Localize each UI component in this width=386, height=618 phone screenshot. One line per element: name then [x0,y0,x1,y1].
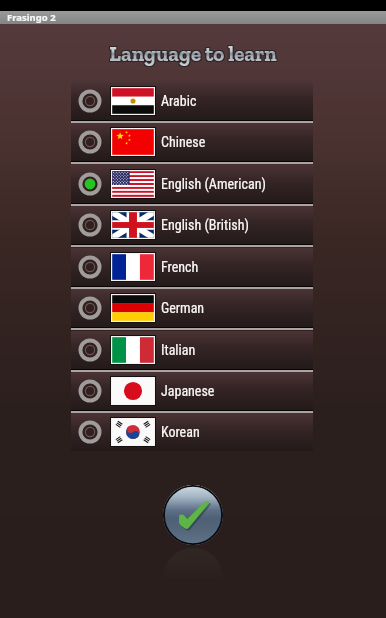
button[interactable]: Italian [71,331,313,369]
button[interactable]: French [71,248,313,286]
staticText: English (British) [161,217,249,233]
staticText: Language to learn [1,41,386,66]
staticText: Language to learn [0,41,386,66]
staticText: Chinese [161,134,206,150]
staticText: French [161,259,199,275]
staticText: Language to learn [0,42,385,67]
staticText: Arabic [161,93,197,109]
button[interactable]: German [71,289,313,327]
staticText: Japanese [161,383,215,399]
button[interactable]: English (American) [71,165,313,203]
staticText: Language to learn [0,40,386,65]
button[interactable]: Chinese [71,123,313,161]
staticText: Language to learn [1,42,386,67]
staticText: Language to learn [0,41,385,66]
button[interactable]: English (British) [71,206,313,244]
staticText: Italian [161,342,196,358]
button[interactable]: Korean [71,413,313,451]
staticText: Language to learn [0,40,385,65]
button[interactable]: Japanese [71,372,313,410]
staticText: English (American) [161,176,266,192]
staticText: Korean [161,424,200,440]
staticText: German [161,300,205,316]
button[interactable]: Confirm [163,485,223,545]
staticText: Language to learn [1,40,386,65]
button[interactable]: Arabic [71,82,313,120]
staticText: Frasingo 2 [7,11,56,24]
staticText: Language to learn [0,42,386,67]
